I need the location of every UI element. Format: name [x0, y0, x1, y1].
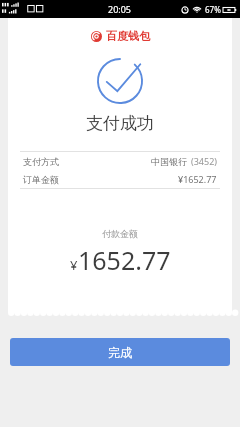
staticText: 支付成功	[86, 113, 154, 134]
staticText: 67%	[205, 4, 221, 15]
staticText: 支付方式	[23, 156, 59, 167]
staticText: ¥	[70, 256, 78, 274]
button[interactable]: 支付方式	[20, 152, 220, 170]
button[interactable]: 完成	[10, 338, 230, 366]
staticText: (3452)	[191, 155, 217, 167]
staticText: 订单金额	[23, 174, 59, 185]
staticText: ¥1652.77	[178, 173, 217, 185]
staticText: 付款金额	[102, 228, 138, 239]
staticText: 1652.77	[78, 243, 171, 277]
staticText: 百度钱包	[106, 29, 150, 43]
button[interactable]: 订单金额	[20, 170, 220, 188]
staticText: 20:05	[108, 3, 132, 15]
staticText: 完成	[108, 345, 132, 360]
staticText: 中国银行	[151, 156, 187, 167]
